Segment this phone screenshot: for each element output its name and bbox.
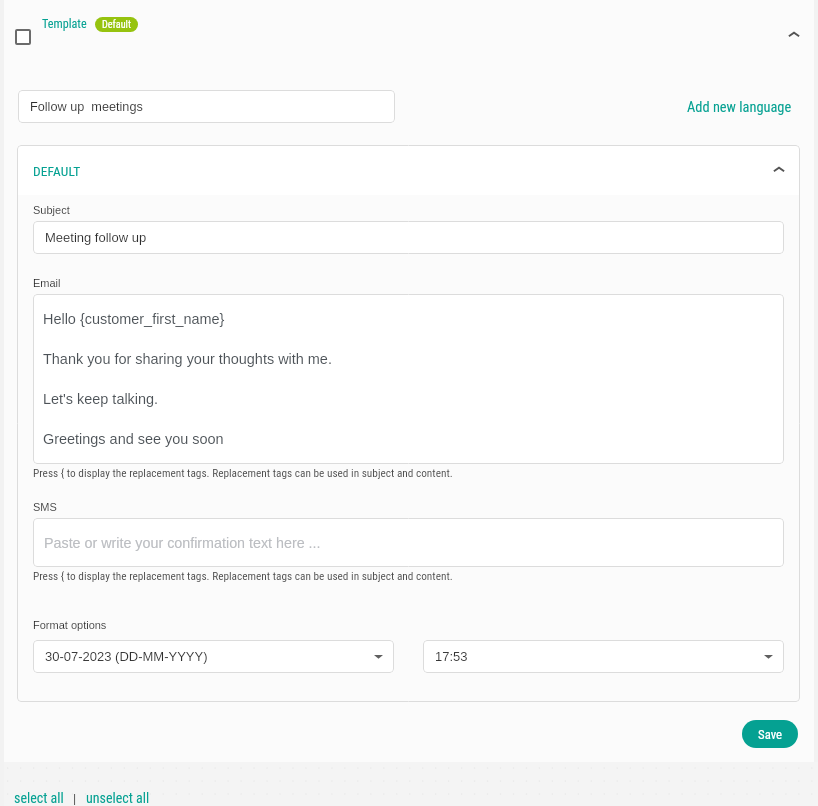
button[interactable]: Template bbox=[42, 17, 87, 31]
button[interactable]: select all bbox=[14, 790, 64, 806]
button[interactable]: unselect all bbox=[86, 790, 150, 806]
staticText: Template bbox=[42, 17, 87, 31]
staticText: Add new language bbox=[687, 99, 792, 116]
button[interactable]: 30-07-2023 (DD-MM-YYYY) bbox=[33, 640, 394, 673]
staticText: Email bbox=[33, 277, 61, 289]
staticText: Let's keep talking. bbox=[43, 391, 159, 407]
button[interactable]: Paste or write your confirmation text he… bbox=[33, 518, 784, 567]
button[interactable]: Default bbox=[95, 17, 138, 32]
staticText: Press { to display the replacement tags.… bbox=[33, 570, 453, 583]
staticText: Default bbox=[102, 19, 131, 31]
staticText: select all bbox=[14, 790, 64, 806]
staticText: Press { to display the replacement tags.… bbox=[33, 467, 453, 480]
staticText: 17:53 bbox=[435, 649, 468, 664]
staticText: Save bbox=[758, 727, 783, 742]
staticText: Paste or write your confirmation text he… bbox=[44, 535, 321, 551]
button[interactable]: Collapse default section bbox=[771, 162, 787, 178]
staticText: | bbox=[73, 791, 77, 806]
button[interactable]: Add new language bbox=[687, 99, 792, 116]
staticText: Greetings and see you soon bbox=[43, 431, 224, 447]
staticText: Format options bbox=[33, 619, 107, 631]
button[interactable]: Meeting follow up bbox=[33, 221, 784, 254]
button[interactable]: Save bbox=[742, 720, 798, 748]
button[interactable]: Collapse template bbox=[786, 27, 802, 43]
button[interactable]: Hello {customer_first_name} bbox=[33, 294, 784, 464]
staticText: unselect all bbox=[86, 790, 150, 806]
staticText: SMS bbox=[33, 501, 57, 513]
button[interactable]: Select template bbox=[15, 29, 31, 45]
button[interactable]: 17:53 bbox=[423, 640, 784, 673]
staticText: Follow up meetings bbox=[30, 100, 143, 114]
staticText: Hello {customer_first_name} bbox=[43, 311, 225, 327]
staticText: Meeting follow up bbox=[45, 230, 147, 245]
staticText: Subject bbox=[33, 204, 70, 216]
staticText: DEFAULT bbox=[33, 164, 81, 180]
button[interactable]: Follow up meetings bbox=[18, 90, 395, 123]
staticText: 30-07-2023 (DD-MM-YYYY) bbox=[45, 649, 208, 664]
button[interactable]: DEFAULT bbox=[33, 164, 81, 180]
staticText: Thank you for sharing your thoughts with… bbox=[43, 351, 332, 367]
